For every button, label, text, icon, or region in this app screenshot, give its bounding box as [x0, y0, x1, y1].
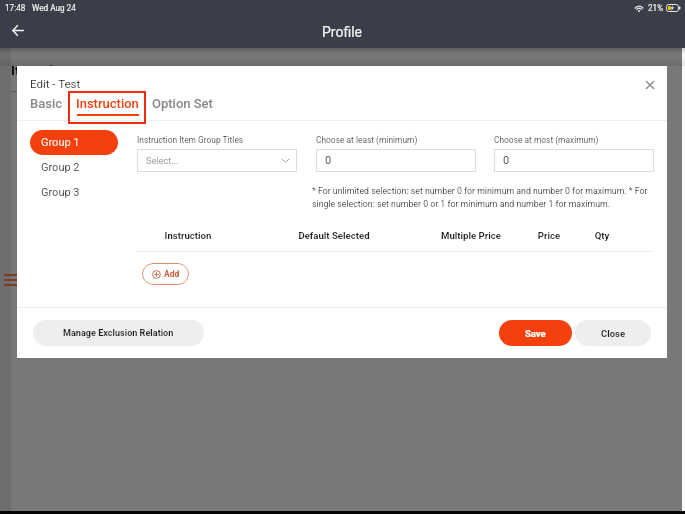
button[interactable]: Manage Exclusion Relation: [33, 320, 204, 346]
staticText: Manage Exclusion Relation: [63, 328, 174, 339]
staticText: Qty: [572, 230, 632, 241]
staticText: Group 1: [41, 136, 80, 149]
button[interactable]: Add: [142, 263, 189, 285]
staticText: Default Selected: [287, 230, 381, 241]
button[interactable]: Basic: [23, 91, 70, 116]
button[interactable]: Group 2: [30, 155, 118, 180]
staticText: Add: [164, 269, 180, 279]
button[interactable]: Close dialog: [640, 75, 660, 95]
staticText: Option Set: [152, 96, 213, 111]
staticText: Choose at least (minimum): [316, 135, 418, 145]
staticText: Wed Aug 24: [32, 3, 76, 13]
button[interactable]: 0: [494, 149, 654, 172]
staticText: 0: [325, 154, 332, 167]
staticText: Price: [519, 230, 579, 241]
staticText: * For unlimited selection: set number 0 …: [312, 186, 682, 209]
staticText: 17:48: [5, 3, 26, 13]
staticText: Save: [525, 328, 546, 339]
button[interactable]: Instruction: [69, 91, 146, 121]
staticText: 0: [503, 154, 510, 167]
button[interactable]: Back: [5, 17, 31, 43]
staticText: 21%: [648, 3, 664, 13]
staticText: Close: [601, 328, 626, 339]
staticText: Instruction Item Group Titles: [137, 135, 244, 145]
button[interactable]: Select...: [137, 149, 297, 172]
button[interactable]: Group 1: [30, 130, 118, 155]
staticText: Basic: [30, 96, 63, 111]
staticText: Edit - Test: [30, 77, 81, 90]
staticText: Choose at most (maximum): [494, 135, 599, 145]
button[interactable]: Group 3: [30, 180, 118, 205]
button[interactable]: 0: [316, 149, 476, 172]
button[interactable]: Save: [499, 320, 572, 346]
staticText: Instruction: [76, 96, 139, 111]
staticText: Item List: [11, 62, 65, 78]
staticText: Multiple Price: [424, 230, 518, 241]
staticText: Group 3: [41, 186, 80, 199]
staticText: Group 2: [41, 161, 80, 174]
button[interactable]: Option Set: [145, 91, 220, 116]
staticText: Profile: [322, 24, 363, 40]
staticText: Instruction: [141, 230, 235, 241]
staticText: Select...: [146, 155, 179, 166]
button[interactable]: Close: [575, 320, 651, 346]
